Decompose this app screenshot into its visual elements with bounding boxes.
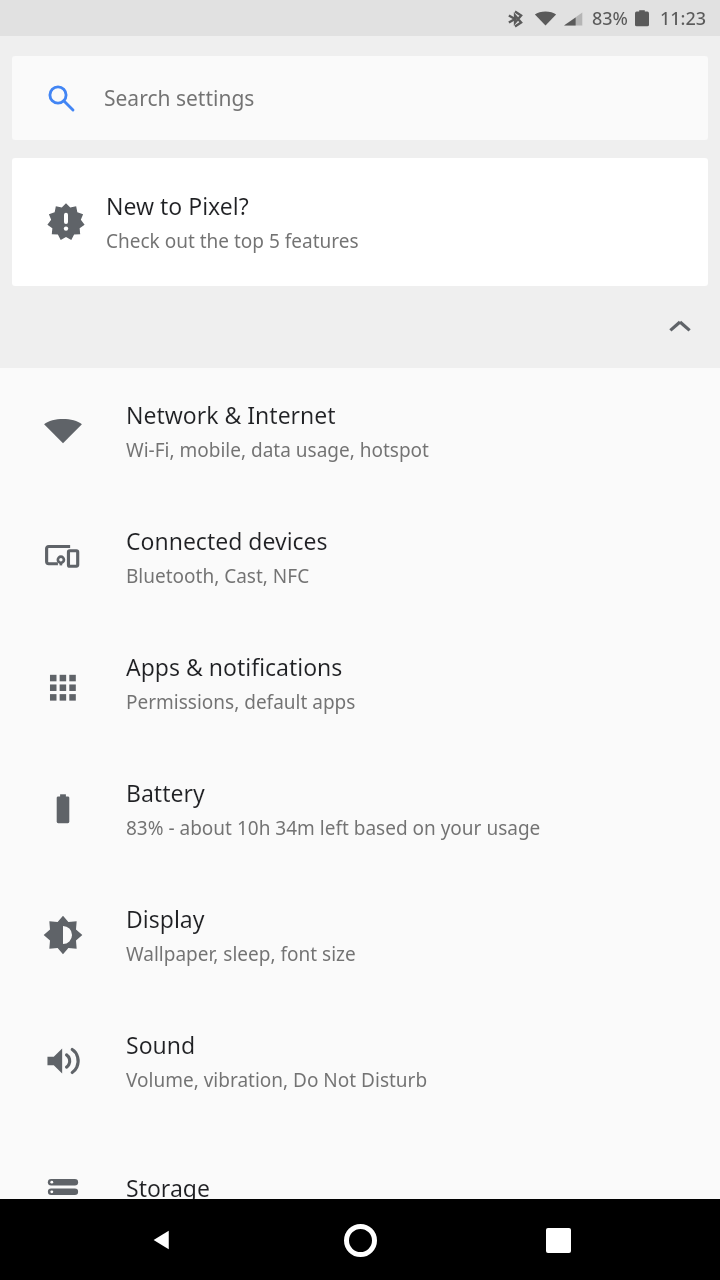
staticText: 11:23 (660, 6, 707, 31)
staticText: Wallpaper, sleep, font size (126, 941, 356, 967)
staticText: Wi-Fi, mobile, data usage, hotspot (126, 437, 429, 463)
staticText: Apps & notifications (126, 651, 343, 682)
button[interactable]: Apps & notifications (0, 620, 720, 746)
button[interactable]: Network & Internet (0, 368, 720, 494)
staticText: 83% (592, 6, 628, 31)
staticText: Sound (126, 1029, 196, 1060)
staticText: Network & Internet (126, 399, 336, 430)
staticText: Search settings (104, 84, 255, 113)
staticText: Permissions, default apps (126, 689, 356, 715)
button[interactable]: Storage (0, 1124, 720, 1250)
staticText: Connected devices (126, 525, 328, 556)
button[interactable]: Recent apps (522, 1204, 594, 1276)
button[interactable]: Connected devices (0, 494, 720, 620)
button[interactable]: Home (324, 1204, 396, 1276)
staticText: Battery (126, 777, 205, 808)
staticText: Bluetooth, Cast, NFC (126, 563, 310, 589)
staticText: 83% - about 10h 34m left based on your u… (126, 815, 541, 841)
staticText: Volume, vibration, Do Not Disturb (126, 1067, 428, 1093)
button[interactable]: Battery (0, 746, 720, 872)
button[interactable]: New to Pixel? (12, 158, 708, 286)
button[interactable]: Sound (0, 998, 720, 1124)
button[interactable]: Search settings (12, 56, 708, 140)
button[interactable]: Back (126, 1204, 198, 1276)
button[interactable]: Collapse suggestions (652, 299, 708, 355)
staticText: Check out the top 5 features (106, 228, 359, 254)
staticText: Storage (126, 1172, 210, 1203)
staticText: New to Pixel? (106, 190, 249, 221)
staticText: Display (126, 903, 205, 934)
button[interactable]: Display (0, 872, 720, 998)
